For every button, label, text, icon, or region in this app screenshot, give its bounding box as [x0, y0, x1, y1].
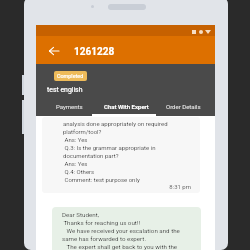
staticText: Q.3: Is the grammar appropriate in — [63, 144, 156, 151]
staticText: The expert shall get back to you with th… — [62, 243, 178, 250]
button[interactable]: analysis done appropriately on required — [42, 117, 200, 193]
staticText: 1261228 — [74, 46, 115, 58]
staticText: Comment: test purpose only — [63, 176, 140, 183]
button[interactable]: Order Details — [155, 98, 212, 116]
staticText: Ans: Yes — [63, 136, 88, 143]
button[interactable]: Chat With Expert — [98, 98, 155, 116]
button[interactable]: Dear Student, — [52, 207, 201, 250]
staticText: 8:31 pm — [169, 183, 191, 190]
staticText: Completed — [57, 73, 84, 79]
staticText: analysis done appropriately on required — [63, 120, 168, 127]
staticText: platform/tool? — [63, 128, 102, 135]
staticText: test english — [47, 86, 83, 94]
button[interactable]: Back — [45, 42, 63, 60]
staticText: Q.4: Others — [63, 168, 95, 175]
staticText: Ans: Yes — [63, 160, 88, 167]
staticText: Order Details — [166, 103, 201, 110]
staticText: Chat With Expert — [104, 103, 149, 110]
staticText: Dear Student, — [62, 211, 99, 218]
staticText: same has forwarded to expert. — [62, 235, 147, 242]
staticText: We have received your escalation and the — [62, 227, 180, 234]
staticText: Thanks for reaching us out!! — [62, 219, 141, 226]
staticText: Payments — [56, 103, 83, 110]
button[interactable]: Payments — [40, 98, 98, 116]
button[interactable]: Completed — [54, 71, 87, 81]
staticText: documentation part? — [63, 152, 119, 159]
